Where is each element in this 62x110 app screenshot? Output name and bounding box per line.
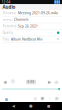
staticText: Sep 26 2021	[18, 24, 38, 28]
button[interactable]: Recents	[44, 102, 52, 110]
staticText: 12:04	[1, 0, 10, 4]
staticText: 🗎	[11, 78, 14, 86]
staticText: Channels	[14, 18, 28, 22]
staticText: Title	[2, 37, 9, 41]
staticText: ■	[47, 104, 50, 108]
button[interactable]: Home	[27, 102, 35, 110]
staticText: Format	[2, 18, 12, 21]
staticText: 0:00	[27, 80, 34, 84]
button[interactable]: Profile	[2, 92, 11, 101]
staticText: ▣	[40, 96, 44, 100]
button[interactable]: Quality	[0, 30, 62, 36]
button[interactable]: Title	[0, 36, 62, 43]
staticText: Quality	[2, 31, 12, 35]
button[interactable]: Loop	[53, 78, 60, 85]
button[interactable]: Recorded	[0, 23, 62, 30]
staticText: ◍	[55, 96, 58, 100]
staticText: Meeting 2021-09-26.m4a	[18, 11, 58, 15]
staticText: ⌂	[34, 96, 37, 100]
button[interactable]: Files	[9, 78, 16, 85]
staticText: ◉	[3, 79, 7, 84]
button[interactable]: Record	[2, 78, 9, 85]
button[interactable]: Filename	[0, 10, 62, 16]
staticText: ▶	[48, 79, 51, 84]
staticText: ✎	[56, 37, 59, 41]
staticText: ◀	[12, 104, 15, 108]
staticText: ◌	[48, 95, 50, 101]
button[interactable]: Back	[9, 102, 17, 110]
staticText: Recorded	[2, 24, 16, 28]
staticText: Album Hardbeat Mix	[11, 37, 43, 41]
button[interactable]: 0:00	[26, 80, 36, 84]
button[interactable]: Action	[53, 92, 60, 101]
staticText: Filename	[2, 11, 16, 15]
button[interactable]: Play	[46, 78, 53, 85]
staticText: Audio	[2, 4, 15, 10]
button[interactable]: Action	[39, 92, 46, 101]
button[interactable]: Action	[32, 92, 39, 101]
staticText: ◎	[54, 79, 58, 84]
staticText: ⬤	[29, 104, 33, 108]
button[interactable]: Format	[0, 17, 62, 23]
staticText: ▌▌▌	[54, 0, 60, 4]
